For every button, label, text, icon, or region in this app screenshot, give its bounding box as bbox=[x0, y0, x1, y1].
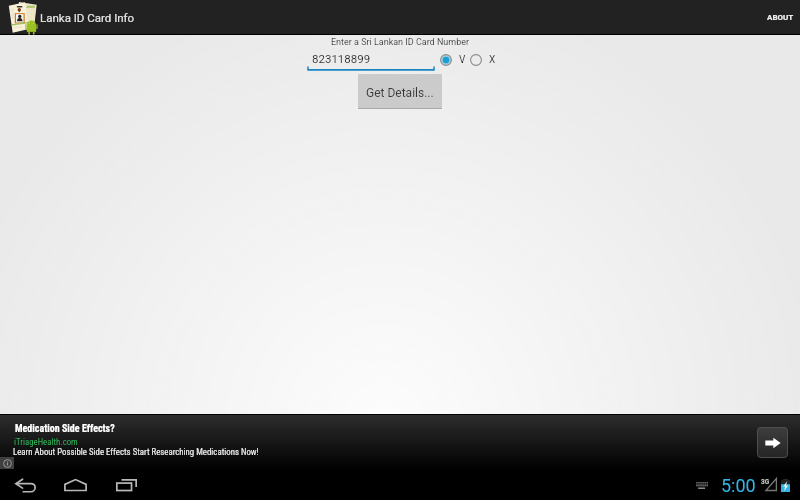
button[interactable]: Recent apps bbox=[110, 470, 142, 500]
staticText: 3G bbox=[761, 478, 770, 486]
staticText: 5:00 bbox=[721, 475, 756, 496]
button[interactable]: Ad choices bbox=[0, 457, 14, 469]
button[interactable]: Status: 3G signal, battery charging bbox=[760, 470, 796, 500]
staticText: 823118899 bbox=[312, 52, 371, 65]
button[interactable]: Open advertisement bbox=[757, 427, 788, 458]
button[interactable]: Back bbox=[9, 470, 41, 500]
button[interactable]: X bbox=[470, 54, 500, 66]
staticText: Medication Side Effects? bbox=[15, 423, 115, 435]
button[interactable]: Medication Side Effects? bbox=[0, 414, 800, 470]
button[interactable]: Switch keyboard bbox=[692, 470, 712, 500]
staticText: Enter a Sri Lankan ID Card Number bbox=[0, 37, 800, 48]
button[interactable]: Lanka ID Card Info bbox=[0, 0, 140, 34]
button[interactable]: Get Details... bbox=[358, 74, 442, 108]
button[interactable]: 5:00 bbox=[714, 470, 762, 500]
staticText: ABOUT bbox=[767, 13, 794, 22]
button[interactable]: 823118899 bbox=[307, 50, 435, 70]
staticText: Get Details... bbox=[366, 86, 434, 100]
staticText: V bbox=[459, 54, 466, 66]
button[interactable]: V bbox=[440, 54, 470, 66]
staticText: iTriageHealth.com bbox=[14, 437, 78, 447]
staticText: X bbox=[489, 54, 496, 66]
staticText: Learn About Possible Side Effects Start … bbox=[13, 447, 259, 457]
button[interactable]: Home bbox=[59, 470, 91, 500]
button[interactable]: ABOUT bbox=[756, 0, 800, 34]
staticText: Lanka ID Card Info bbox=[40, 11, 135, 24]
